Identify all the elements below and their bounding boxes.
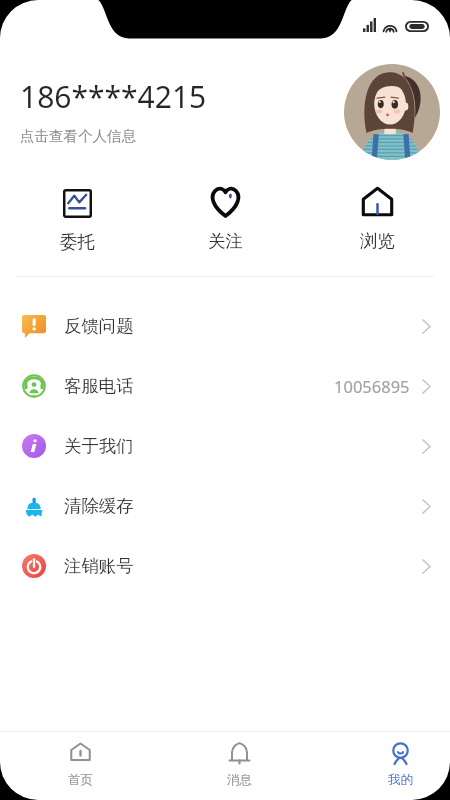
button[interactable]: 清除缓存 <box>0 476 450 536</box>
staticText: 点击查看个人信息 <box>20 127 136 145</box>
staticText: 客服电话 <box>64 375 134 397</box>
button[interactable]: 消息 <box>199 731 279 800</box>
staticText: 反馈问题 <box>64 315 134 337</box>
staticText: 清除缓存 <box>64 495 134 517</box>
button[interactable]: 浏览 <box>337 178 417 260</box>
button[interactable]: 客服电话 <box>0 356 450 416</box>
button[interactable]: 关于我们 <box>0 416 450 476</box>
button[interactable]: 首页 <box>40 731 120 800</box>
staticText: 首页 <box>68 772 93 788</box>
staticText: 关于我们 <box>64 435 134 457</box>
staticText: 浏览 <box>360 230 395 252</box>
staticText: 我的 <box>388 772 413 788</box>
button[interactable]: 关注 <box>185 178 265 260</box>
staticText: 186****4215 <box>20 76 207 117</box>
button[interactable]: 我的 <box>360 731 440 800</box>
staticText: 委托 <box>60 231 95 253</box>
button[interactable]: 委托 <box>37 179 117 261</box>
staticText: 关注 <box>208 230 243 252</box>
staticText: 注销账号 <box>64 555 134 577</box>
button[interactable]: 186****4215 <box>0 56 450 168</box>
button[interactable]: 注销账号 <box>0 536 450 596</box>
button[interactable]: 反馈问题 <box>0 296 450 356</box>
staticText: 消息 <box>227 772 252 788</box>
staticText: 10056895 <box>334 375 410 397</box>
